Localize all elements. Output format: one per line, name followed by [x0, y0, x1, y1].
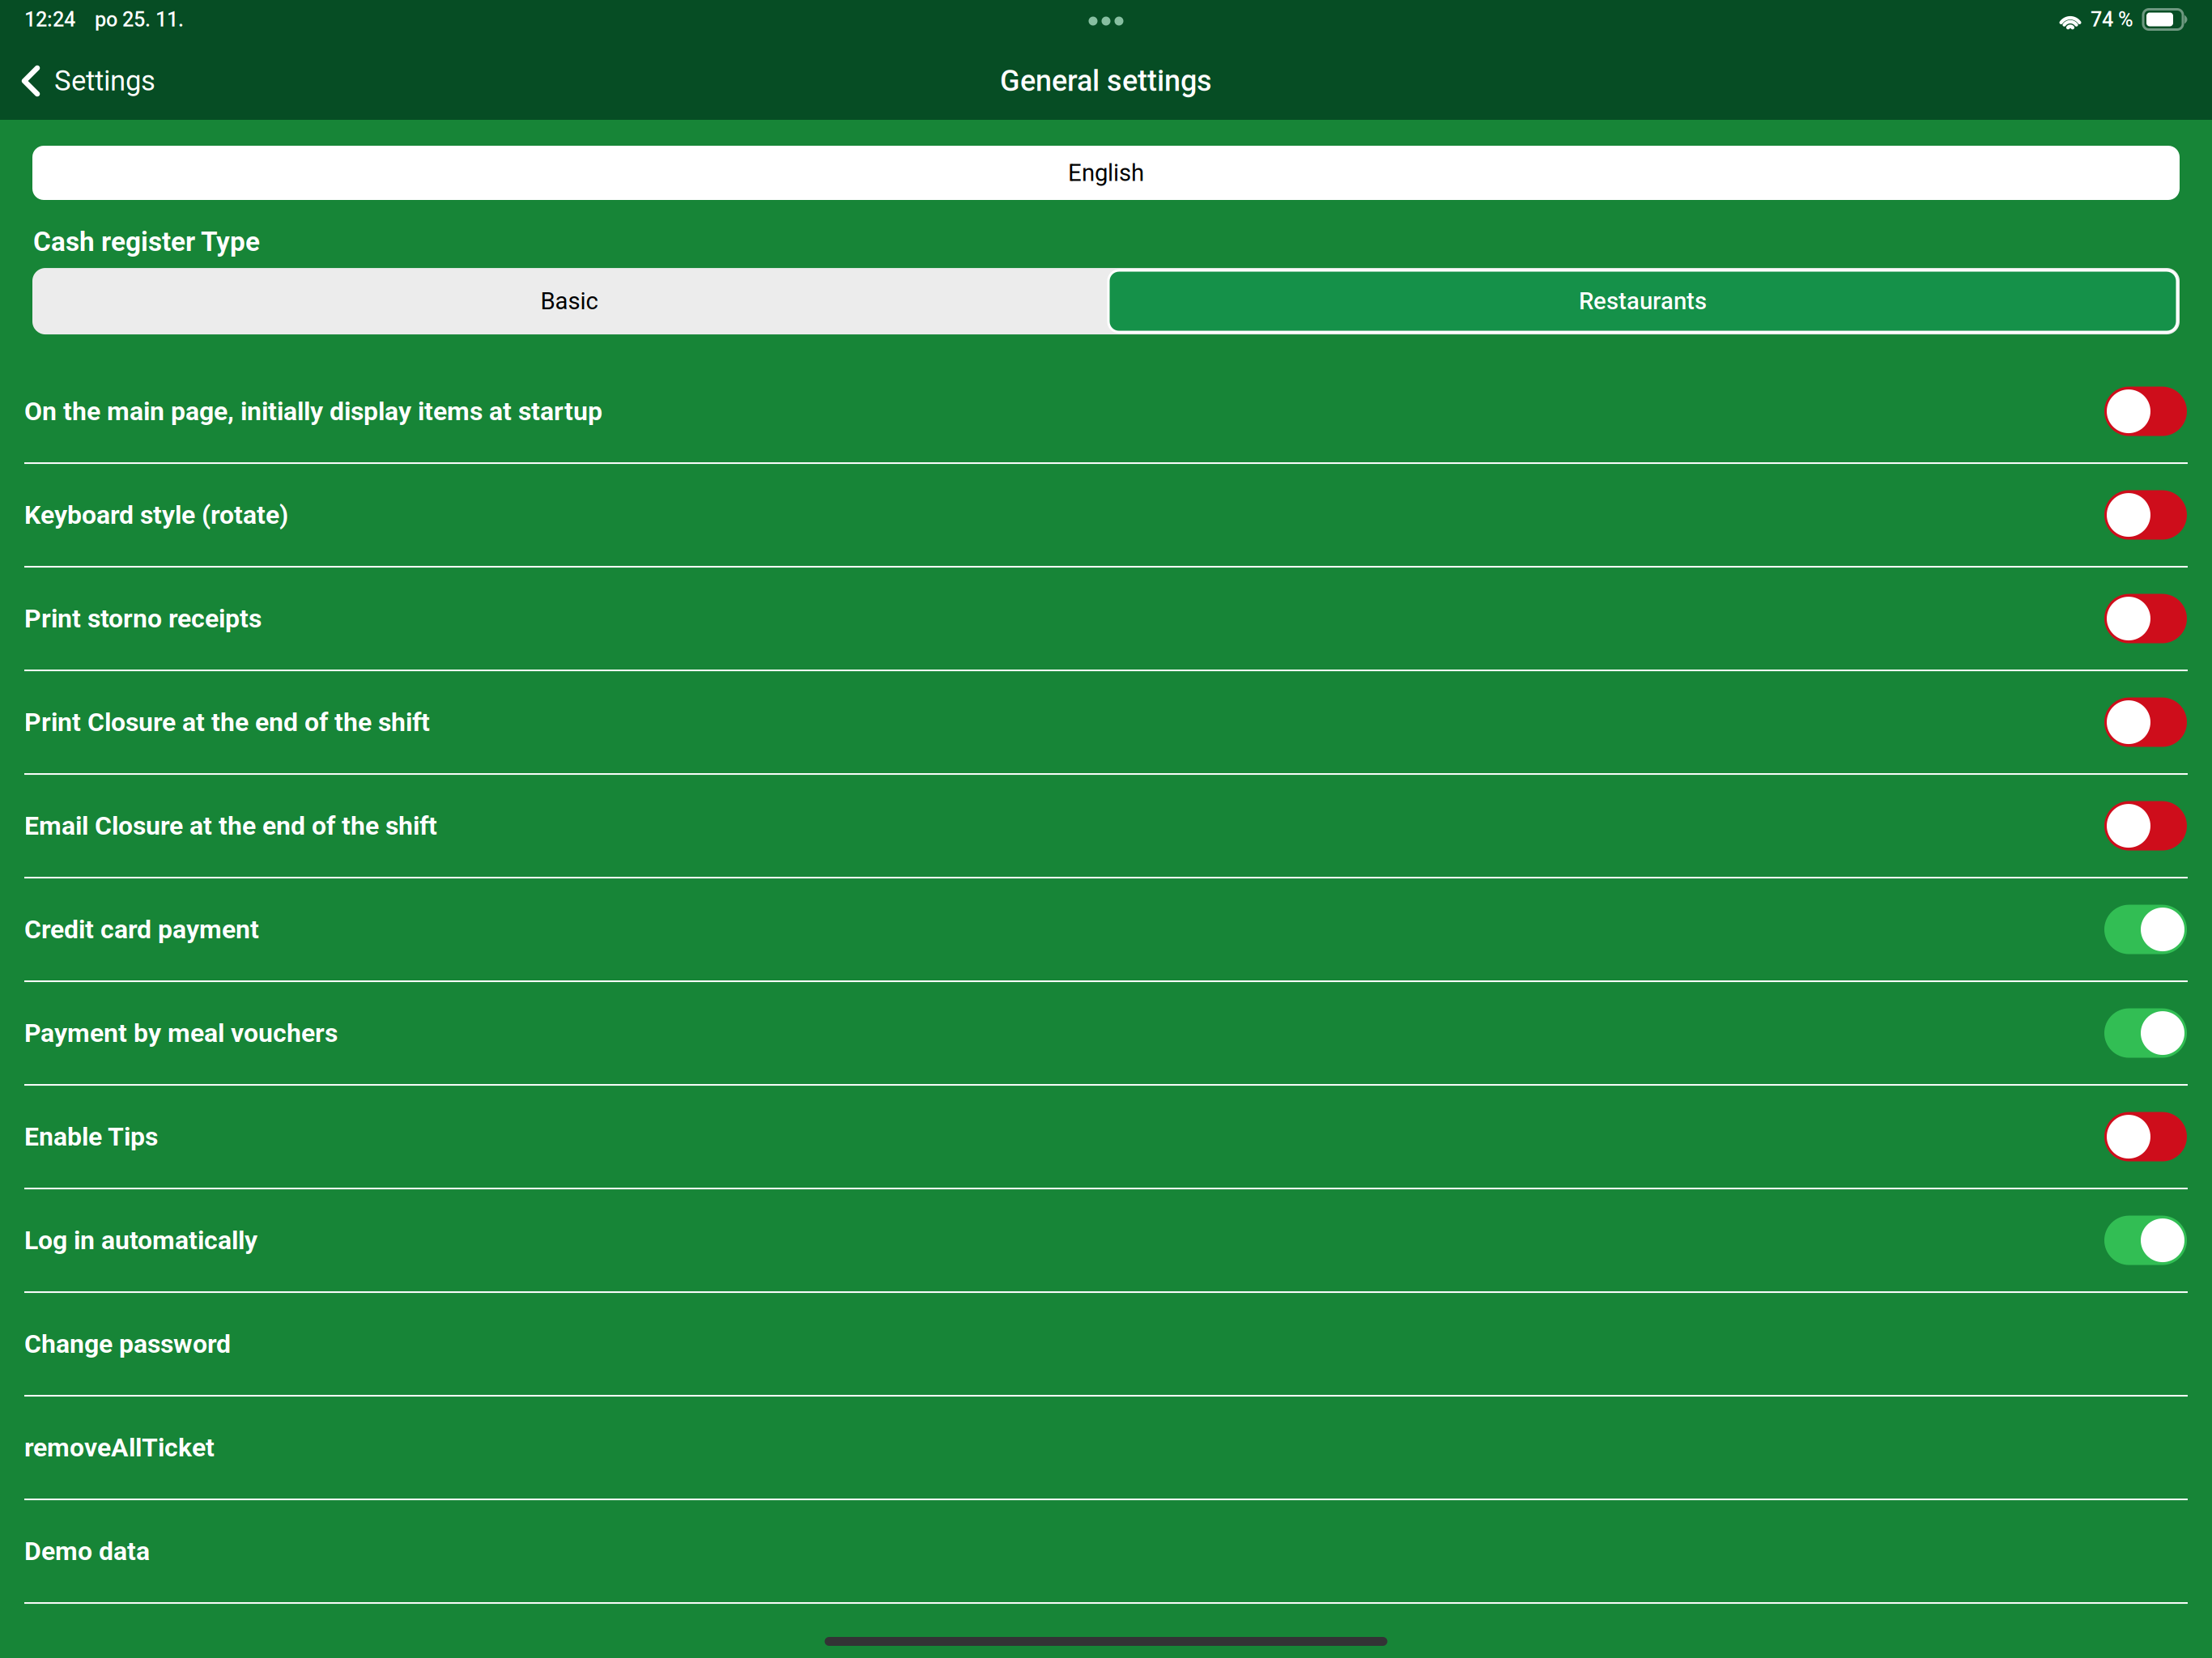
- staticText: Credit card payment: [24, 914, 259, 945]
- staticText: Print Closure at the end of the shift: [24, 707, 430, 737]
- button[interactable]: Print storno receipts: [0, 568, 2212, 671]
- staticText: Settings: [54, 65, 155, 97]
- staticText: Change password: [24, 1329, 231, 1359]
- button[interactable]: On the main page, initially display item…: [0, 360, 2212, 464]
- staticText: 12:24: [24, 7, 75, 31]
- staticText: Payment by meal vouchers: [24, 1018, 338, 1048]
- staticText: Email Closure at the end of the shift: [24, 811, 437, 841]
- staticText: Enable Tips: [24, 1121, 158, 1152]
- staticText: Log in automatically: [24, 1225, 257, 1255]
- button[interactable]: Email Closure at the end of the shift: [0, 775, 2212, 878]
- staticText: 74 %: [2091, 7, 2133, 31]
- button[interactable]: Demo data: [0, 1500, 2212, 1604]
- staticText: Basic: [540, 287, 598, 315]
- button[interactable]: Enable Tips: [0, 1086, 2212, 1189]
- button[interactable]: Print Closure at the end of the shift: [0, 671, 2212, 775]
- staticText: removeAllTicket: [24, 1432, 215, 1463]
- staticText: On the main page, initially display item…: [24, 396, 602, 426]
- staticText: Restaurants: [1579, 287, 1707, 315]
- button[interactable]: Log in automatically: [0, 1189, 2212, 1293]
- staticText: Demo data: [24, 1536, 150, 1566]
- button[interactable]: Payment by meal vouchers: [0, 982, 2212, 1086]
- staticText: Keyboard style (rotate): [24, 500, 288, 530]
- button[interactable]: Basic: [32, 268, 1106, 334]
- button[interactable]: Credit card payment: [0, 878, 2212, 982]
- button[interactable]: Keyboard style (rotate): [0, 464, 2212, 568]
- button[interactable]: removeAllTicket: [0, 1397, 2212, 1500]
- staticText: Cash register Type: [33, 226, 260, 258]
- button[interactable]: English: [32, 146, 2180, 200]
- staticText: General settings: [1000, 64, 1212, 98]
- button[interactable]: Restaurants: [1106, 270, 2180, 332]
- button[interactable]: Back to Settings: [0, 56, 170, 105]
- staticText: English: [1068, 159, 1144, 187]
- button[interactable]: Change password: [0, 1293, 2212, 1397]
- staticText: po 25. 11.: [95, 7, 184, 31]
- staticText: Print storno receipts: [24, 603, 262, 634]
